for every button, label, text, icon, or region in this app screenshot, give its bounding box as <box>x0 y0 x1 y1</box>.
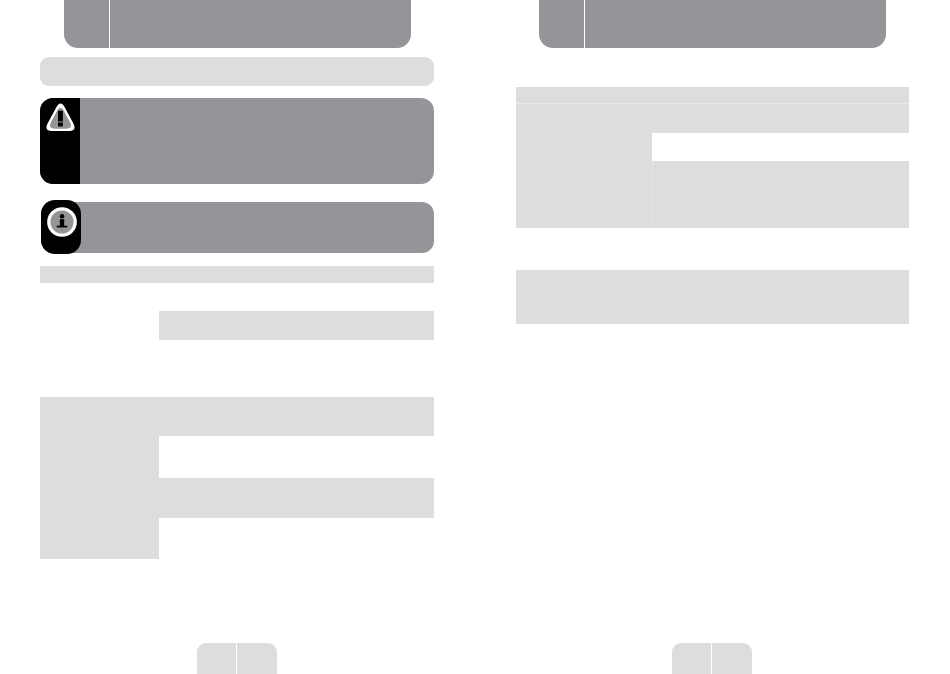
button[interactable]: Top app bar <box>539 0 886 48</box>
button[interactable]: Detail item <box>516 104 909 229</box>
other: Warning <box>43 99 78 134</box>
button[interactable]: Top app bar <box>64 0 411 48</box>
button[interactable]: Profile tab <box>712 643 751 674</box>
button[interactable]: Home tab <box>672 643 711 674</box>
button[interactable]: Info <box>41 200 81 254</box>
button[interactable]: List item <box>40 397 434 559</box>
button[interactable]: Home tab <box>197 643 236 674</box>
button[interactable] <box>41 202 434 253</box>
button[interactable]: Warning <box>40 98 434 184</box>
button[interactable]: Profile tab <box>237 643 276 674</box>
